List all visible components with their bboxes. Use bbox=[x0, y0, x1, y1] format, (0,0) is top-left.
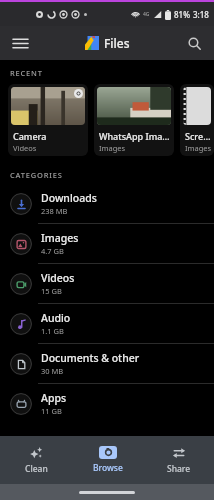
button[interactable]: Open navigation menu bbox=[6, 29, 34, 57]
staticText: Browse bbox=[93, 462, 123, 474]
staticText: WhatsApp Imag… bbox=[99, 130, 171, 142]
button[interactable]: Downloads bbox=[0, 184, 214, 223]
staticText: CATEGORIES bbox=[10, 170, 63, 180]
staticText: Apps bbox=[41, 391, 67, 405]
button[interactable]: WhatsApp Imag… bbox=[94, 84, 174, 156]
staticText: Images bbox=[185, 143, 212, 153]
staticText: Images bbox=[41, 231, 79, 245]
staticText: Clean bbox=[25, 463, 48, 475]
button[interactable]: ScreenM bbox=[180, 84, 214, 156]
button[interactable]: Clean bbox=[0, 436, 72, 484]
staticText: Videos bbox=[13, 143, 37, 153]
staticText: 238 MB bbox=[41, 206, 68, 216]
button[interactable]: Audio bbox=[0, 304, 214, 343]
staticText: RECENT bbox=[10, 68, 43, 78]
staticText: ScreenM bbox=[185, 130, 211, 142]
staticText: 11 GB bbox=[41, 406, 62, 416]
staticText: Documents & other bbox=[41, 351, 140, 365]
staticText: 81% bbox=[174, 9, 190, 20]
staticText: Files bbox=[104, 35, 130, 51]
staticText: Camera bbox=[13, 130, 47, 142]
staticText: 15 GB bbox=[41, 286, 62, 296]
staticText: 3:18 bbox=[193, 9, 209, 20]
staticText: 30 MB bbox=[41, 366, 64, 376]
button[interactable]: Search bbox=[180, 29, 208, 57]
staticText: Share bbox=[167, 463, 191, 475]
button[interactable]: Browse bbox=[72, 436, 143, 484]
button[interactable]: Images bbox=[0, 224, 214, 263]
staticText: Videos bbox=[41, 271, 75, 285]
button[interactable]: Videos bbox=[0, 264, 214, 303]
staticText: 1.1 GB bbox=[41, 326, 64, 336]
staticText: Audio bbox=[41, 311, 71, 325]
staticText: 4G bbox=[143, 11, 150, 18]
staticText: Downloads bbox=[41, 191, 97, 205]
staticText: Images bbox=[99, 143, 126, 153]
button[interactable]: Apps bbox=[0, 384, 214, 423]
button[interactable]: Documents & other bbox=[0, 344, 214, 383]
button[interactable]: Camera bbox=[8, 84, 88, 156]
staticText: 4.7 GB bbox=[41, 246, 64, 256]
button[interactable]: Share bbox=[143, 436, 214, 484]
